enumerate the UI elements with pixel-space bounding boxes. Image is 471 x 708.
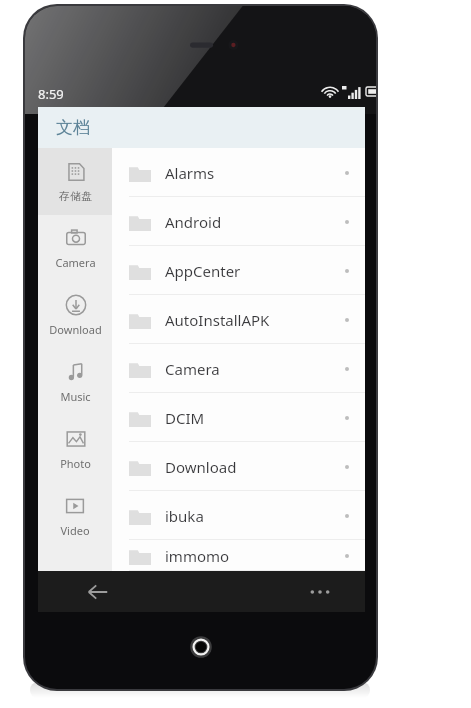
button[interactable]: AppCenter (112, 246, 365, 295)
staticText: Alarms (165, 163, 215, 183)
button[interactable]: 文档 (38, 107, 365, 148)
staticText: Photo (60, 456, 91, 471)
button[interactable]: immomo (112, 540, 365, 571)
staticText: 8:59 (38, 85, 64, 103)
staticText: AutoInstallAPK (165, 310, 270, 330)
button[interactable]: Download (112, 442, 365, 491)
button[interactable]: Android (112, 197, 365, 246)
staticText: Music (60, 389, 91, 404)
staticText: immomo (165, 546, 230, 566)
button[interactable]: DCIM (112, 393, 365, 442)
button[interactable]: Music (38, 349, 112, 416)
staticText: DCIM (165, 408, 205, 428)
staticText: 文档 (56, 117, 90, 138)
button[interactable]: Camera (38, 215, 112, 282)
staticText: Download (49, 322, 102, 337)
staticText: AppCenter (165, 261, 241, 281)
button[interactable]: AutoInstallAPK (112, 295, 365, 344)
button[interactable]: More options (275, 571, 365, 612)
button[interactable]: Photo (38, 416, 112, 483)
staticText: Camera (165, 359, 220, 379)
button[interactable]: 存储盘 (38, 148, 112, 215)
button[interactable]: Video (38, 483, 112, 550)
staticText: Video (60, 523, 90, 538)
button[interactable]: ibuka (112, 491, 365, 540)
staticText: Download (165, 457, 237, 477)
button[interactable]: Alarms (112, 148, 365, 197)
button[interactable]: Home (189, 635, 213, 659)
button[interactable]: Camera (112, 344, 365, 393)
staticText: Android (165, 212, 222, 232)
button[interactable]: Back (38, 571, 158, 612)
staticText: Camera (55, 255, 96, 270)
button[interactable]: Download (38, 282, 112, 349)
staticText: 存储盘 (59, 189, 92, 203)
staticText: ibuka (165, 506, 204, 526)
